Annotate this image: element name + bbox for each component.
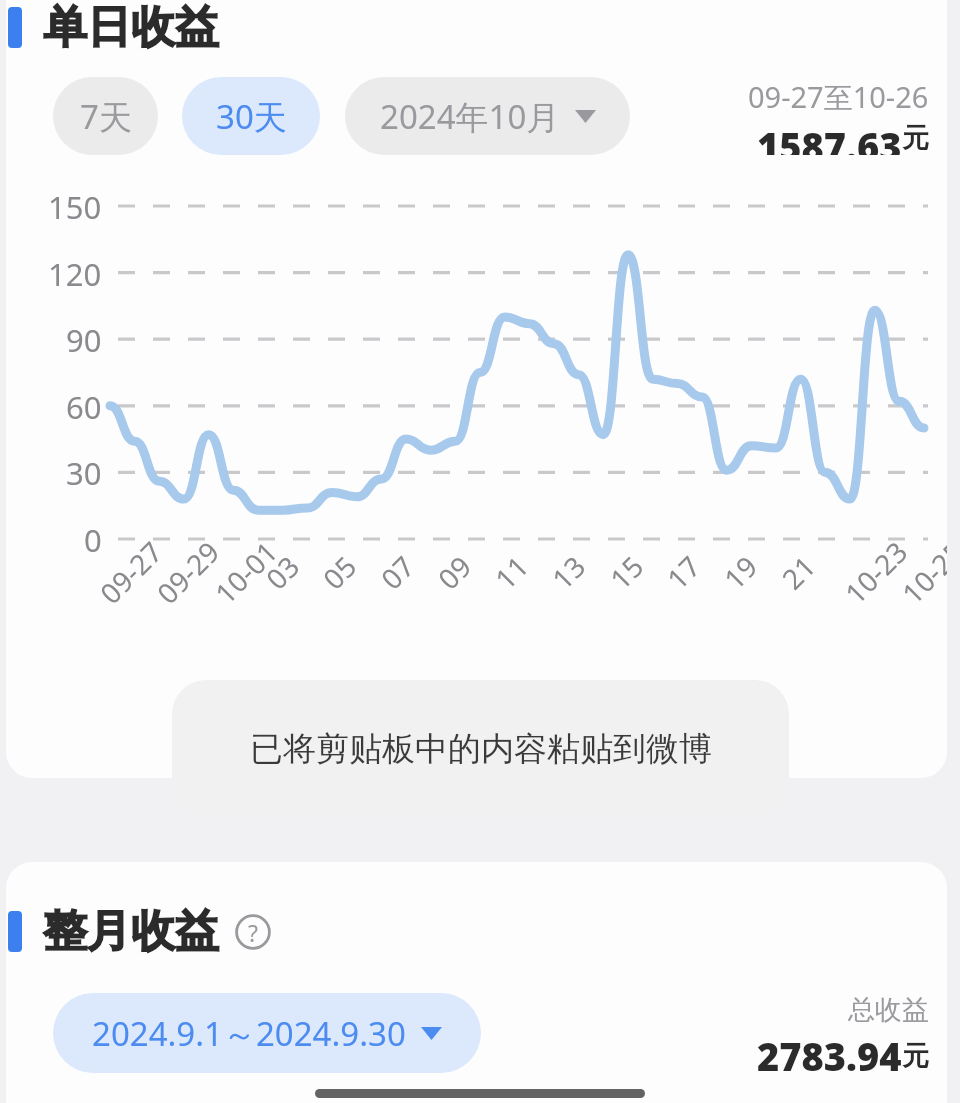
staticText: 10-25 — [893, 532, 947, 612]
staticText: 05 — [314, 547, 365, 597]
button[interactable]: 2024.9.1～2024.9.30 — [53, 993, 481, 1073]
staticText: 09-29 — [148, 532, 228, 612]
staticText: 已将剪贴板中的内容粘贴到微博 — [250, 728, 712, 770]
staticText: 15 — [601, 547, 652, 597]
staticText: 整月收益 — [43, 904, 219, 959]
staticText: 元 — [902, 121, 929, 155]
staticText: 30天 — [216, 94, 287, 139]
staticText: 19 — [715, 547, 766, 597]
staticText: 90 — [66, 319, 102, 361]
staticText: 7天 — [80, 94, 132, 139]
staticText: 0 — [84, 519, 102, 561]
staticText: 17 — [658, 547, 709, 597]
button[interactable]: 30天 — [182, 77, 320, 155]
staticText: 1587.63 — [757, 120, 902, 155]
staticText: 13 — [543, 547, 594, 597]
staticText: 09 — [429, 547, 480, 597]
staticText: 2024年10月 — [380, 94, 560, 139]
button[interactable]: 2024年10月 — [345, 77, 630, 155]
staticText: 03 — [257, 547, 308, 597]
staticText: 30 — [66, 452, 102, 494]
staticText: 2783.94 — [757, 1030, 902, 1073]
staticText: 10-23 — [836, 532, 916, 612]
staticText: 09-27至10-26 — [748, 77, 929, 117]
staticText: 单日收益 — [43, 0, 219, 55]
staticText: 2024.9.1～2024.9.30 — [92, 1011, 406, 1056]
staticText: 11 — [486, 547, 537, 597]
button[interactable]: 7天 — [53, 77, 158, 155]
staticText: ? — [248, 917, 258, 948]
staticText: 09-27 — [91, 532, 171, 612]
staticText: 总收益 — [848, 993, 929, 1027]
staticText: 10-01 — [206, 532, 286, 612]
staticText: 150 — [48, 186, 102, 228]
button[interactable]: 帮助 — [235, 914, 271, 950]
staticText: 120 — [48, 253, 102, 295]
staticText: 60 — [66, 386, 102, 428]
staticText: 07 — [372, 547, 423, 597]
staticText: 21 — [773, 547, 824, 597]
staticText: 元 — [902, 1039, 929, 1073]
